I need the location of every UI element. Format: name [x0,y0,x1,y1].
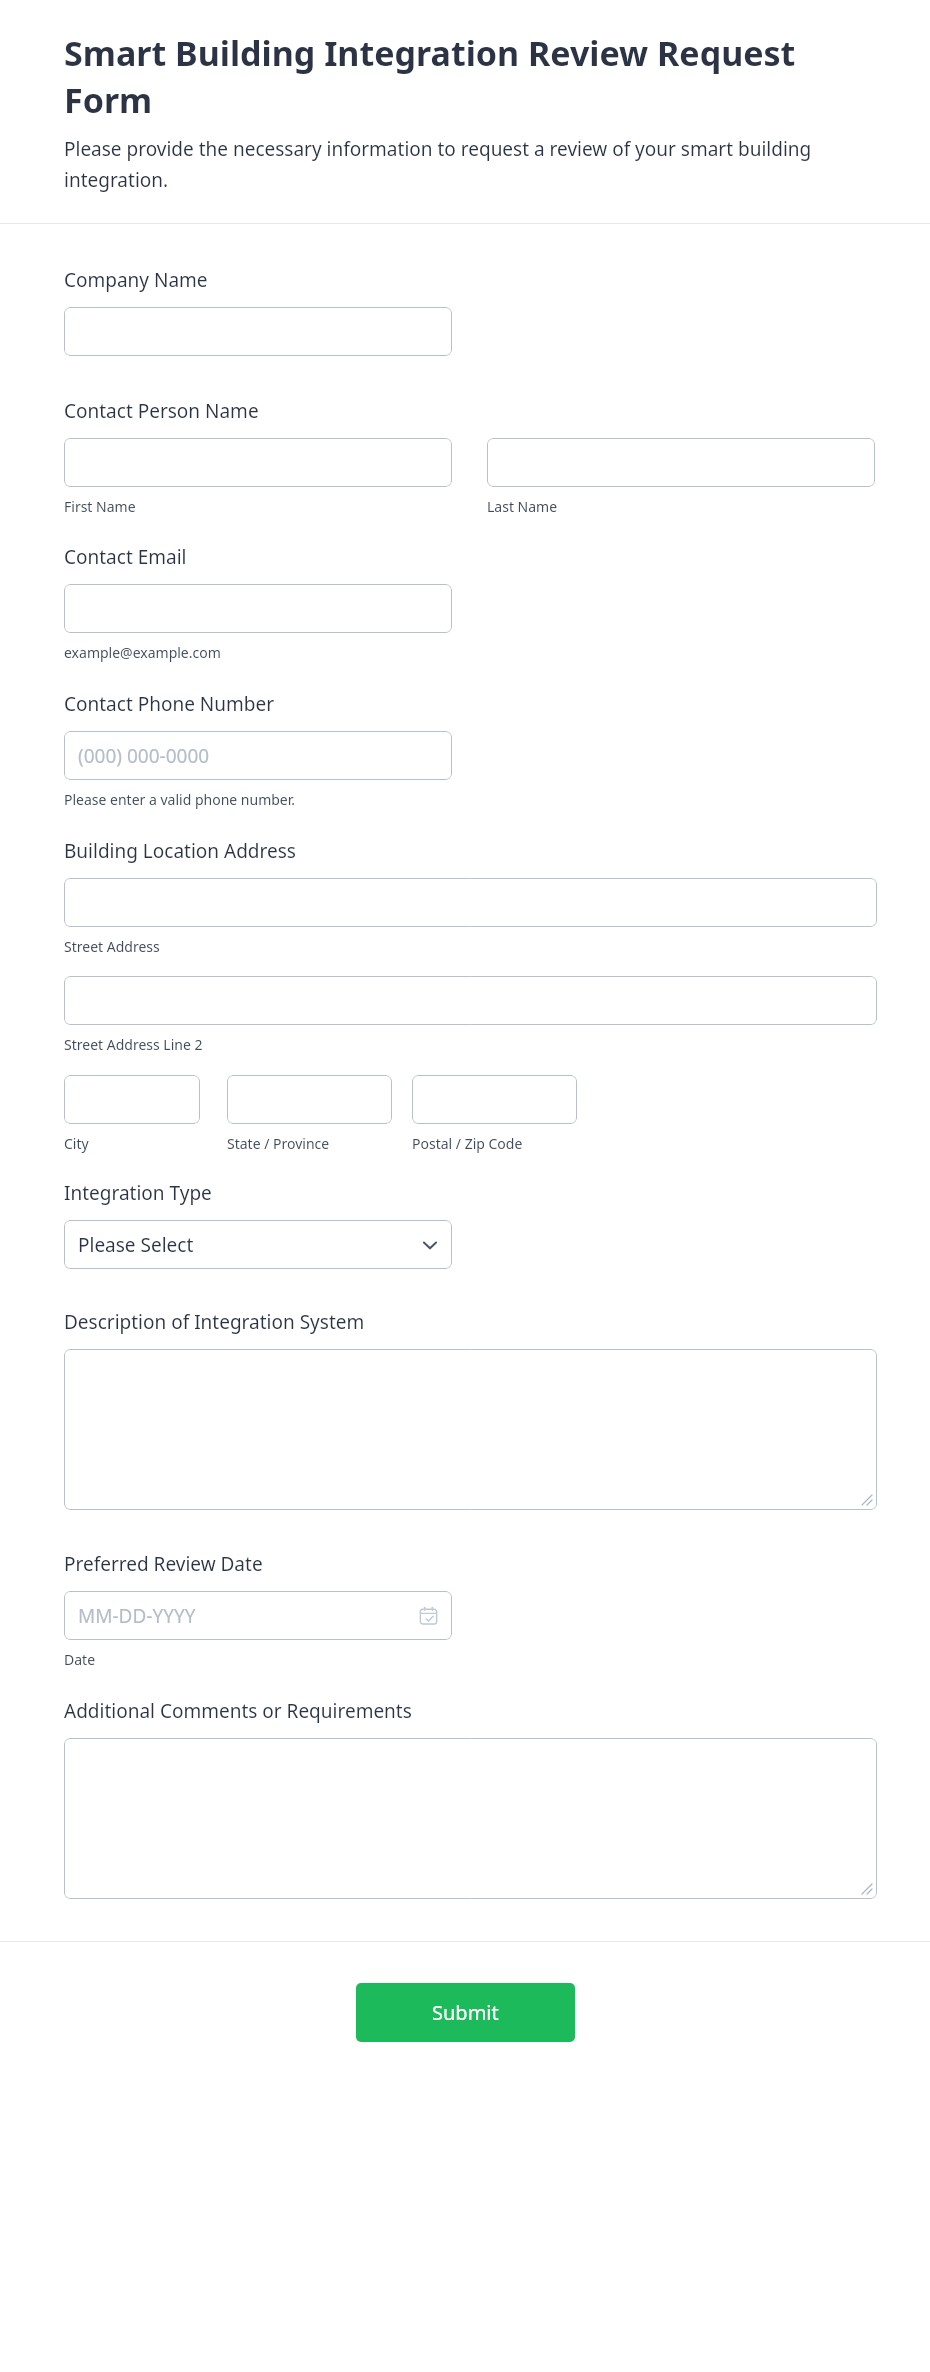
staticText: MM-DD-YYYY [78,1603,196,1629]
staticText: Smart Building Integration Review Reques… [64,30,870,123]
staticText: Contact Phone Number [64,691,275,717]
button[interactable]: Street Address Line 2 [64,976,877,1025]
staticText: Please enter a valid phone number. [64,790,296,809]
button[interactable]: City [64,1075,200,1124]
staticText: Company Name [64,267,208,293]
button[interactable]: State / Province [227,1075,392,1124]
staticText: Contact Person Name [64,398,259,424]
staticText: (000) 000-0000 [78,743,210,769]
button[interactable]: Last Name [487,438,875,487]
staticText: Last Name [487,497,558,516]
button[interactable]: Postal / Zip Code [412,1075,577,1124]
button[interactable]: Street Address [64,878,877,927]
staticText: Contact Email [64,544,187,570]
staticText: Street Address Line 2 [64,1035,203,1054]
staticText: City [64,1134,89,1153]
staticText: example@example.com [64,643,221,662]
button[interactable]: Description of Integration System [64,1349,877,1510]
staticText: Integration Type [64,1180,212,1206]
staticText: Description of Integration System [64,1309,365,1335]
staticText: First Name [64,497,136,516]
staticText: Please provide the necessary information… [64,136,870,192]
staticText: Postal / Zip Code [412,1134,523,1153]
button[interactable]: Integration Type dropdown [64,1220,452,1269]
button[interactable]: Contact Phone Number [64,731,452,780]
button[interactable]: First Name [64,438,452,487]
staticText: Building Location Address [64,838,296,864]
staticText: Please Select [78,1232,194,1258]
staticText: Preferred Review Date [64,1551,263,1577]
staticText: Street Address [64,937,160,956]
button[interactable]: Preferred Review Date [64,1591,452,1640]
staticText: Additional Comments or Requirements [64,1698,412,1724]
staticText: Submit [432,1999,499,2026]
button[interactable]: Additional Comments or Requirements [64,1738,877,1899]
staticText: State / Province [227,1134,330,1153]
staticText: Date [64,1650,96,1669]
button[interactable]: Submit [356,1983,575,2042]
button[interactable]: Company Name [64,307,452,356]
button[interactable]: Contact Email [64,584,452,633]
